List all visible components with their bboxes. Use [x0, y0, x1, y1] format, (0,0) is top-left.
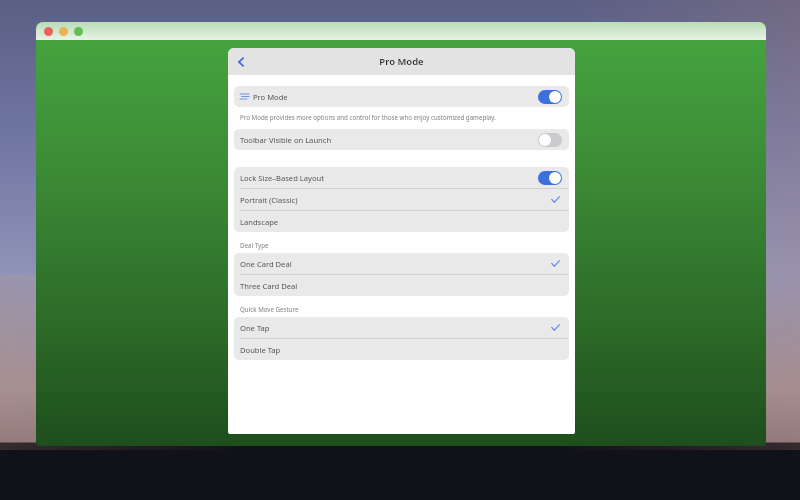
staticText: Double Tap [240, 345, 281, 355]
button[interactable]: Back [228, 49, 254, 75]
staticText: Portrait (Classic) [240, 195, 298, 205]
button[interactable]: Close [44, 27, 53, 36]
button[interactable]: Landscape [234, 211, 569, 232]
staticText: One Card Deal [240, 259, 292, 269]
button[interactable]: Three Card Deal [234, 275, 569, 296]
staticText: Lock Size–Based Layout [240, 173, 324, 183]
staticText: Pro Mode provides more options and contr… [240, 113, 496, 121]
button[interactable]: Pro Mode [234, 86, 569, 107]
button[interactable]: Toggle on [538, 90, 562, 104]
button[interactable]: One Tap [234, 317, 569, 338]
staticText: Landscape [240, 217, 279, 227]
staticText: Pro Mode [379, 55, 424, 68]
button[interactable]: One Card Deal [234, 253, 569, 274]
staticText: Quick Move Gesture [240, 305, 299, 313]
button[interactable]: Toggle off [538, 133, 562, 147]
staticText: Three Card Deal [240, 281, 298, 291]
staticText: Toolbar Visible on Launch [240, 135, 332, 145]
staticText: Deal Type [240, 241, 269, 249]
staticText: One Tap [240, 323, 270, 333]
button[interactable]: Minimize [59, 27, 68, 36]
button[interactable]: Lock Size–Based Layout [234, 167, 569, 188]
button[interactable]: Double Tap [234, 339, 569, 360]
button[interactable]: Portrait (Classic) [234, 189, 569, 210]
button[interactable]: Zoom [74, 27, 83, 36]
button[interactable]: Toolbar Visible on Launch [234, 129, 569, 150]
staticText: Pro Mode [253, 92, 288, 102]
button[interactable]: Toggle on [538, 171, 562, 185]
